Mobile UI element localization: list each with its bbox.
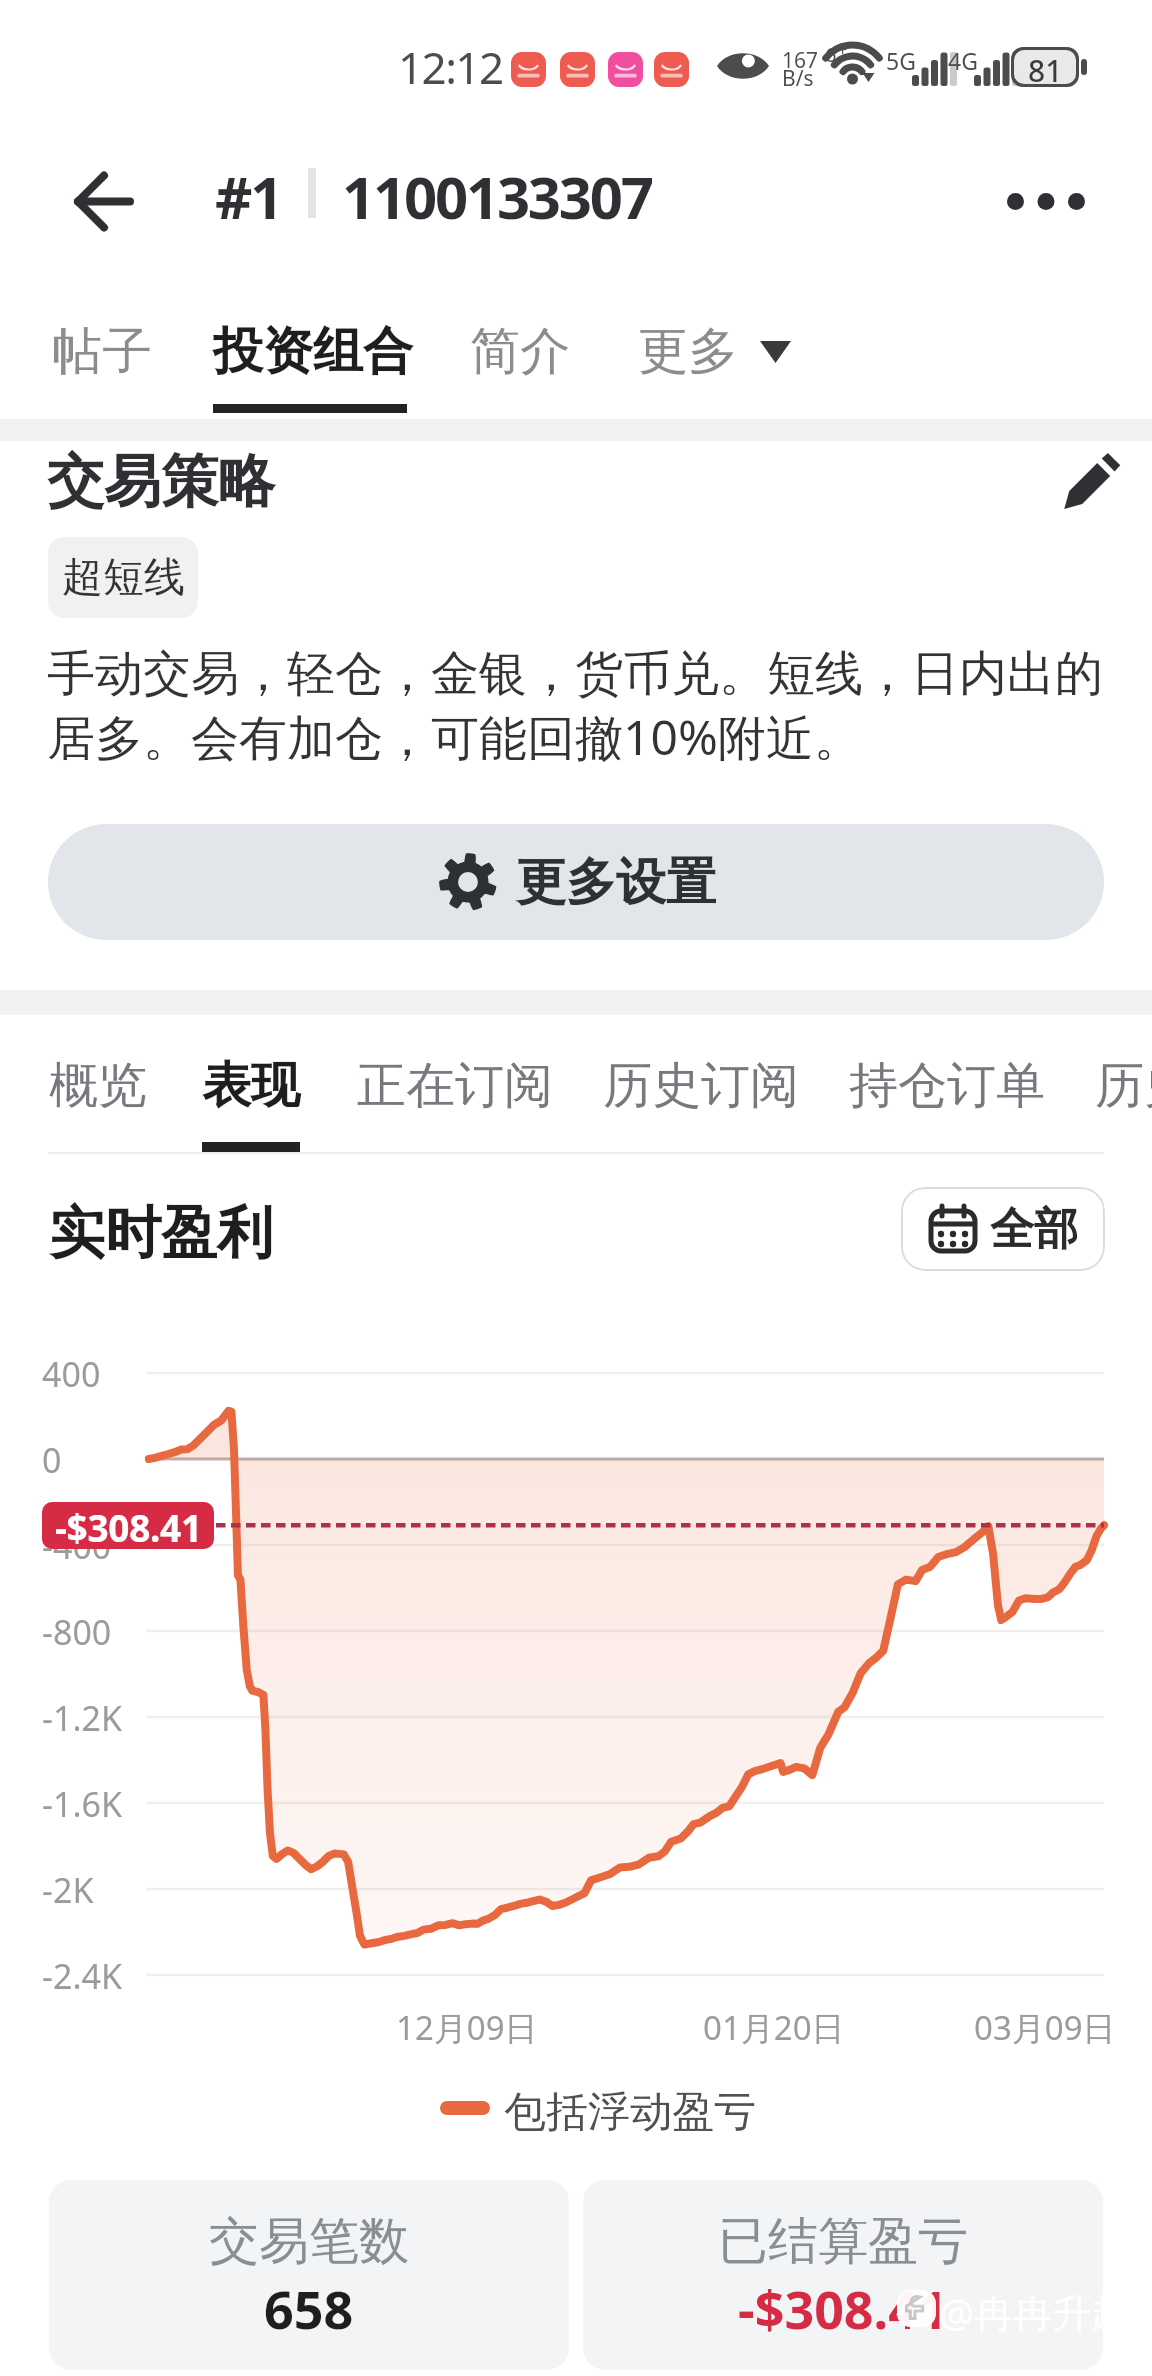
- button[interactable]: 历史订阅: [603, 1038, 799, 1134]
- button[interactable]: 简介: [470, 306, 570, 396]
- staticText: -2.4K: [42, 1953, 123, 1997]
- button[interactable]: Edit: [1060, 451, 1120, 511]
- staticText: 81: [1028, 50, 1063, 84]
- staticText: 01月20日: [703, 2005, 845, 2050]
- staticText: 4G: [948, 45, 978, 76]
- button[interactable]: 超短线: [48, 537, 198, 618]
- staticText: 167: [782, 46, 819, 75]
- button[interactable]: 历史: [1095, 1038, 1152, 1134]
- button[interactable]: 表现: [202, 1038, 300, 1134]
- staticText: 1100133307: [342, 157, 652, 229]
- staticText: 6: [825, 41, 837, 68]
- staticText: 交易策略: [47, 446, 275, 518]
- staticText: 表现: [202, 1055, 300, 1117]
- staticText: 658: [264, 2273, 354, 2344]
- staticText: 历史订阅: [603, 1055, 799, 1117]
- staticText: 400: [42, 1351, 101, 1395]
- staticText: 更多设置: [516, 851, 716, 914]
- staticText: 已结算盈亏: [718, 2210, 968, 2273]
- staticText: 更多: [638, 320, 738, 383]
- button[interactable]: 帖子: [52, 306, 152, 396]
- staticText: 5G: [886, 45, 916, 76]
- staticText: -$308.41: [55, 1502, 202, 1549]
- staticText: B/s: [782, 64, 814, 93]
- staticText: 手动交易，轻仓，金银，货币兑。短线，日内出的: [47, 644, 1152, 704]
- staticText: #1: [215, 157, 282, 229]
- staticText: 概览: [49, 1055, 147, 1117]
- staticText: 12月09日: [396, 2005, 538, 2050]
- staticText: 包括浮动盈亏: [504, 2086, 756, 2139]
- button[interactable]: 持仓订单: [849, 1038, 1045, 1134]
- button[interactable]: Back: [55, 153, 151, 249]
- staticText: 简介: [470, 320, 570, 383]
- staticText: 实时盈利: [49, 1198, 273, 1269]
- button[interactable]: More options: [996, 151, 1096, 251]
- staticText: -$308.41: [738, 2273, 948, 2344]
- button[interactable]: 交易笔数: [49, 2180, 569, 2370]
- staticText: 投资组合: [213, 320, 413, 383]
- staticText: 帖子: [52, 320, 152, 383]
- staticText: 0: [42, 1437, 62, 1481]
- staticText: 居多。会有加仓，可能回撤10%附近。: [47, 704, 1152, 770]
- button[interactable]: 正在订阅: [357, 1038, 553, 1134]
- staticText: -400: [42, 1523, 112, 1567]
- staticText: 交易笔数: [209, 2210, 409, 2273]
- staticText: -1.6K: [42, 1781, 123, 1825]
- staticText: 历史: [1095, 1055, 1152, 1117]
- staticText: +: [838, 39, 848, 61]
- staticText: 持仓订单: [849, 1055, 1045, 1117]
- button[interactable]: 投资组合: [213, 306, 413, 396]
- button[interactable]: 全部: [901, 1187, 1105, 1271]
- staticText: @冉冉升起: [939, 2285, 1131, 2338]
- staticText: -800: [42, 1609, 112, 1653]
- button[interactable]: 更多: [638, 306, 791, 396]
- button[interactable]: 概览: [49, 1038, 147, 1134]
- staticText: -2K: [42, 1867, 94, 1911]
- staticText: 正在订阅: [357, 1055, 553, 1117]
- staticText: -1.2K: [42, 1695, 123, 1739]
- staticText: 12:12: [398, 37, 503, 97]
- staticText: 全部: [990, 1202, 1078, 1257]
- staticText: 超短线: [62, 552, 185, 604]
- staticText: 03月09日: [974, 2005, 1116, 2050]
- button[interactable]: 已结算盈亏: [583, 2180, 1103, 2370]
- button[interactable]: 更多设置: [48, 824, 1104, 940]
